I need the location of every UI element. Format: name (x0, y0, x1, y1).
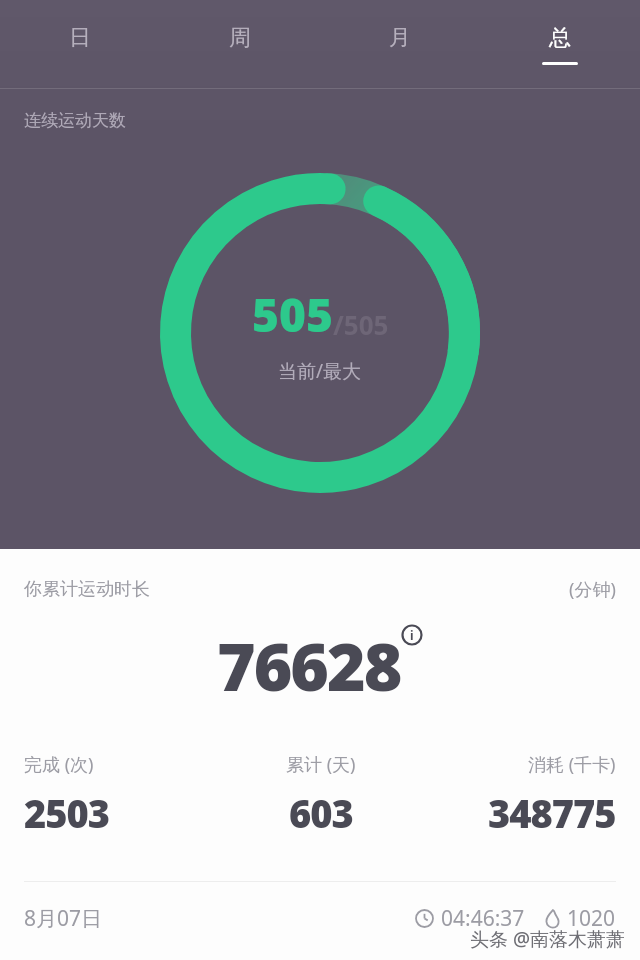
staticText: 消耗 (千卡) (528, 752, 616, 777)
staticText: 你累计运动时长 (24, 578, 150, 601)
staticText: 04:46:37 (441, 904, 525, 933)
button[interactable]: 总 (480, 0, 640, 88)
staticText: 76628 (217, 620, 401, 710)
staticText: 日 (69, 24, 91, 52)
button[interactable]: 日 (0, 0, 160, 88)
staticText: 当前/最大 (278, 358, 362, 384)
staticText: 2503 (24, 787, 110, 839)
button[interactable]: 月 (320, 0, 480, 88)
staticText: 头条 @南落木萧萧 (470, 926, 626, 952)
staticText: 8月07日 (24, 904, 103, 933)
staticText: 348775 (488, 787, 616, 839)
button[interactable]: 说明 (401, 624, 423, 646)
button[interactable]: 完成 (次) (24, 752, 222, 839)
staticText: 1020 (567, 904, 616, 933)
staticText: 连续运动天数 (24, 110, 126, 131)
staticText: 完成 (次) (24, 752, 94, 777)
staticText: i (410, 627, 414, 643)
button[interactable]: 累计 (天) (222, 752, 419, 839)
staticText: 505 (252, 283, 333, 346)
staticText: 总 (549, 24, 571, 52)
staticText: 累计 (天) (286, 752, 356, 777)
staticText: (分钟) (569, 577, 616, 602)
staticText: 603 (289, 787, 353, 839)
button[interactable]: 周 (160, 0, 320, 88)
staticText: 周 (229, 24, 251, 52)
button[interactable]: 消耗 (千卡) (419, 752, 616, 839)
staticText: 月 (389, 24, 411, 52)
staticText: /505 (333, 307, 389, 342)
